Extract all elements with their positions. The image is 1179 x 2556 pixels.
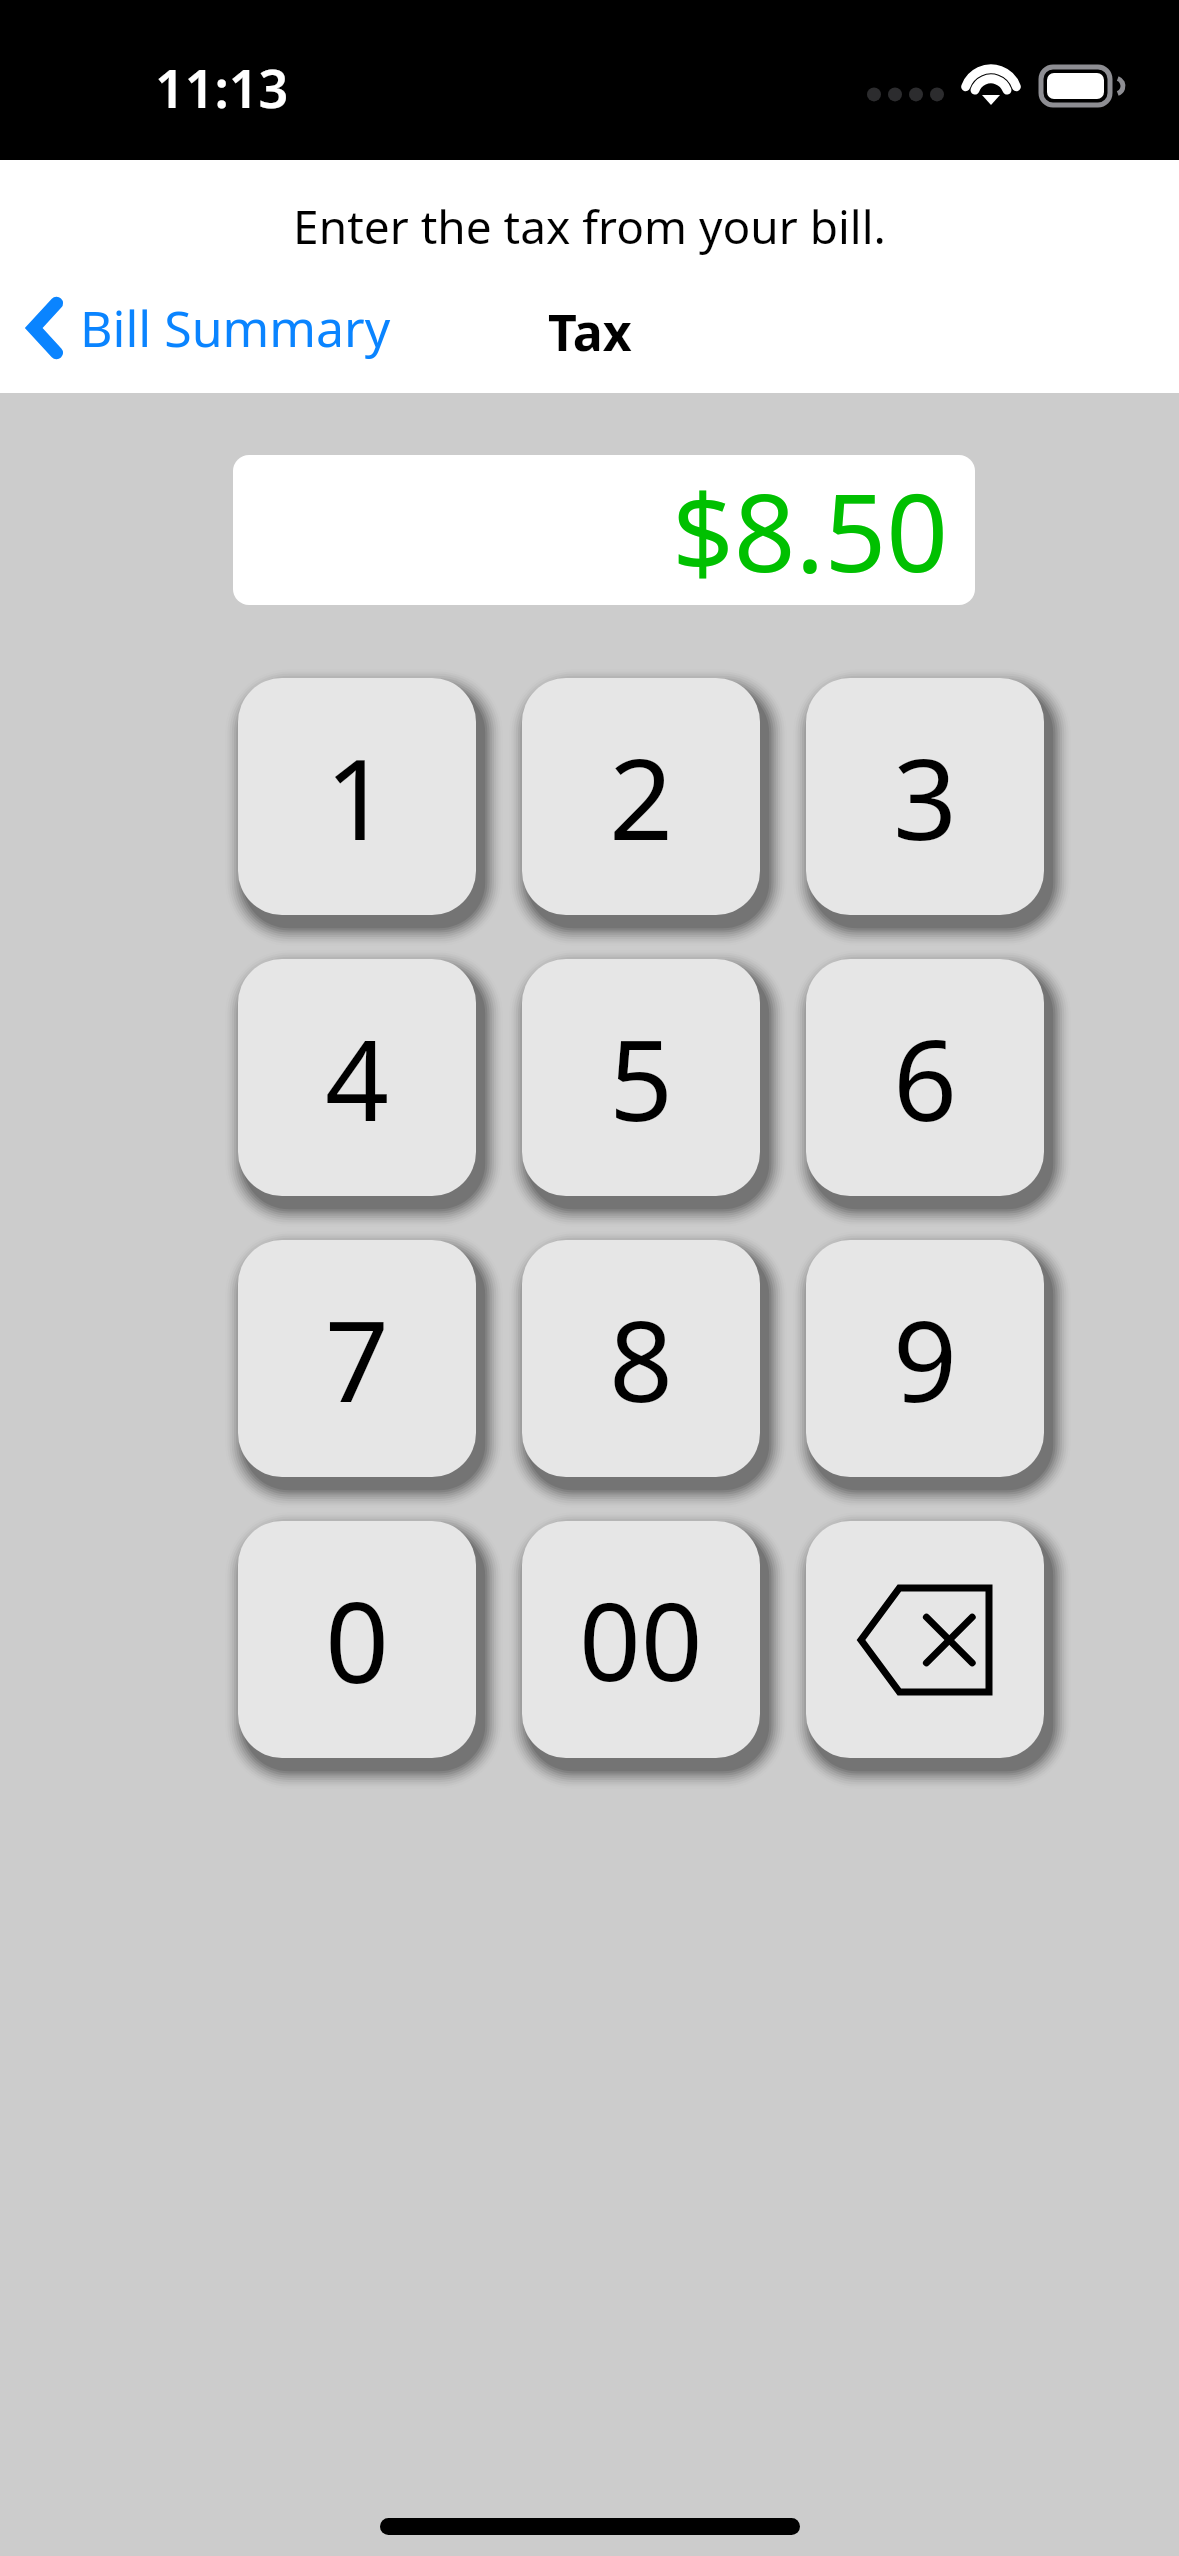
- staticText: Tax: [548, 298, 632, 366]
- button[interactable]: 6: [806, 959, 1044, 1196]
- button[interactable]: 8: [522, 1240, 760, 1477]
- button[interactable]: Backspace: [806, 1521, 1044, 1758]
- button[interactable]: 5: [522, 959, 760, 1196]
- staticText: 9: [893, 1282, 958, 1435]
- button[interactable]: Bill Summary: [18, 288, 397, 368]
- staticText: $8.50: [672, 457, 949, 604]
- button[interactable]: $8.50: [233, 455, 975, 605]
- staticText: Enter the tax from your bill.: [0, 195, 1179, 258]
- staticText: 1: [325, 720, 390, 873]
- staticText: 5: [609, 1001, 674, 1154]
- staticText: 0: [325, 1563, 390, 1716]
- staticText: 2: [609, 720, 674, 873]
- button[interactable]: 2: [522, 678, 760, 915]
- button[interactable]: 4: [238, 959, 476, 1196]
- button[interactable]: 0: [238, 1521, 476, 1758]
- staticText: 8: [609, 1282, 674, 1435]
- button[interactable]: 00: [522, 1521, 760, 1758]
- staticText: 4: [325, 1001, 390, 1154]
- staticText: Bill Summary: [80, 294, 391, 362]
- button[interactable]: 9: [806, 1240, 1044, 1477]
- staticText: 00: [579, 1566, 703, 1713]
- staticText: 6: [893, 1001, 958, 1154]
- button[interactable]: 1: [238, 678, 476, 915]
- button[interactable]: 3: [806, 678, 1044, 915]
- staticText: 11:13: [155, 52, 289, 123]
- button[interactable]: 7: [238, 1240, 476, 1477]
- staticText: 3: [893, 720, 958, 873]
- staticText: 7: [325, 1282, 390, 1435]
